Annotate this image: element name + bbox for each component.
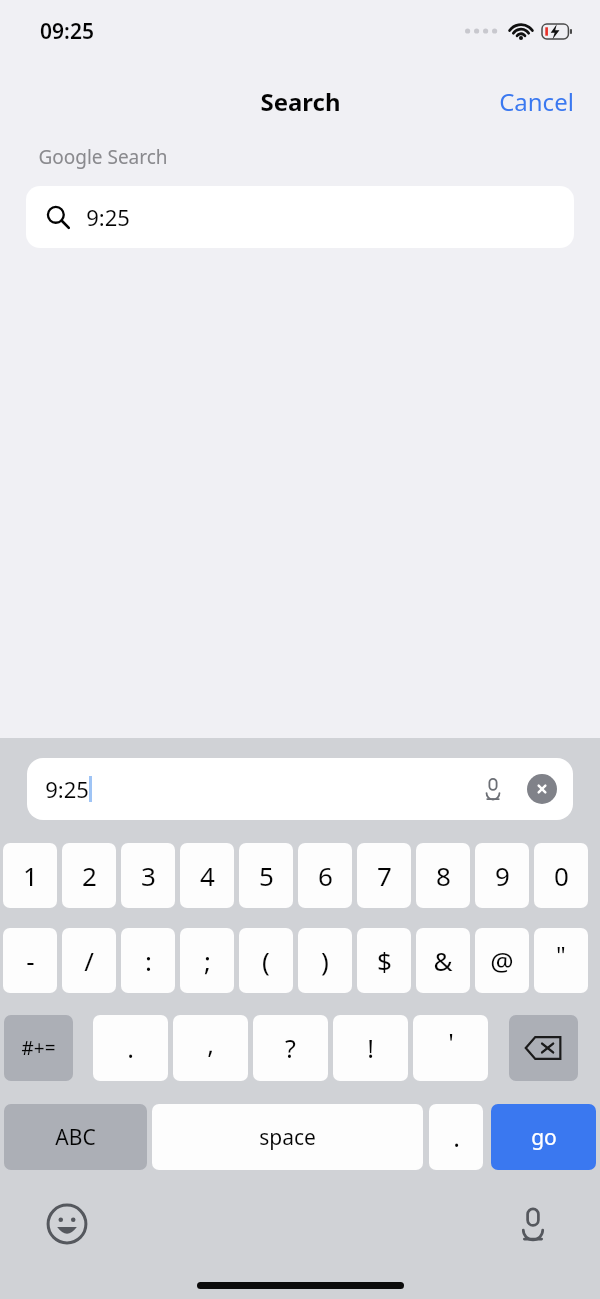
button[interactable]: 9 bbox=[475, 843, 529, 908]
staticText: ABC bbox=[55, 1123, 96, 1152]
button[interactable]: 9:25 bbox=[27, 758, 573, 820]
staticText: : bbox=[145, 943, 152, 978]
staticText: , bbox=[207, 1027, 214, 1061]
staticText: & bbox=[433, 943, 453, 978]
button[interactable]: ) bbox=[298, 928, 352, 993]
staticText: - bbox=[26, 943, 35, 978]
button[interactable]: " bbox=[534, 928, 588, 993]
button[interactable]: 6 bbox=[298, 843, 352, 908]
button[interactable]: ? bbox=[253, 1015, 328, 1081]
staticText: 1 bbox=[23, 858, 38, 893]
staticText: space bbox=[259, 1123, 316, 1152]
staticText: 5 bbox=[259, 858, 274, 893]
button[interactable]: space bbox=[152, 1104, 423, 1170]
button[interactable]: 1 bbox=[3, 843, 57, 908]
button[interactable]: go bbox=[491, 1104, 596, 1170]
staticText: 4 bbox=[200, 858, 215, 893]
staticText: 0 bbox=[554, 858, 569, 893]
staticText: Cancel bbox=[499, 85, 574, 118]
staticText: 09:25 bbox=[40, 17, 94, 46]
button[interactable]: 3 bbox=[121, 843, 175, 908]
staticText: 9:25 bbox=[45, 774, 89, 804]
button[interactable]: Emoji keyboard bbox=[42, 1199, 92, 1249]
staticText: 9:25 bbox=[86, 202, 130, 232]
button[interactable]: . bbox=[93, 1015, 168, 1081]
button[interactable]: ; bbox=[180, 928, 234, 993]
staticText: ' bbox=[448, 1025, 454, 1059]
button[interactable]: Clear text bbox=[527, 774, 557, 804]
staticText: @ bbox=[490, 943, 514, 978]
staticText: . bbox=[453, 1120, 460, 1154]
staticText: ) bbox=[321, 943, 329, 978]
staticText: 8 bbox=[436, 858, 451, 893]
button[interactable]: & bbox=[416, 928, 470, 993]
staticText: ! bbox=[367, 1031, 374, 1065]
button[interactable]: 0 bbox=[534, 843, 588, 908]
button[interactable]: 2 bbox=[62, 843, 116, 908]
staticText: . bbox=[127, 1031, 134, 1065]
button[interactable]: Voice input bbox=[473, 769, 513, 809]
button[interactable]: Cancel bbox=[493, 81, 580, 122]
button[interactable]: ABC bbox=[4, 1104, 147, 1170]
staticText: / bbox=[84, 943, 94, 978]
staticText: $ bbox=[377, 943, 392, 978]
button[interactable]: ' bbox=[413, 1015, 488, 1081]
button[interactable]: 7 bbox=[357, 843, 411, 908]
staticText: go bbox=[531, 1123, 557, 1152]
button[interactable]: @ bbox=[475, 928, 529, 993]
button[interactable]: $ bbox=[357, 928, 411, 993]
button[interactable]: ! bbox=[333, 1015, 408, 1081]
button[interactable]: / bbox=[62, 928, 116, 993]
staticText: ; bbox=[204, 943, 211, 978]
staticText: " bbox=[556, 938, 566, 971]
button[interactable]: Voice dictation bbox=[508, 1199, 558, 1249]
button[interactable]: ( bbox=[239, 928, 293, 993]
button[interactable]: #+= bbox=[4, 1015, 73, 1081]
staticText: #+= bbox=[21, 1035, 56, 1061]
button[interactable]: , bbox=[173, 1015, 248, 1081]
staticText: Google Search bbox=[38, 144, 168, 170]
button[interactable] bbox=[509, 1015, 578, 1081]
staticText: ? bbox=[285, 1031, 296, 1065]
button[interactable]: 9:25 bbox=[26, 186, 574, 248]
staticText: 9 bbox=[495, 858, 510, 893]
staticText: 6 bbox=[318, 858, 333, 893]
staticText: Search bbox=[260, 85, 341, 118]
staticText: 7 bbox=[377, 858, 392, 893]
staticText: 3 bbox=[141, 858, 156, 893]
button[interactable]: 8 bbox=[416, 843, 470, 908]
button[interactable]: : bbox=[121, 928, 175, 993]
staticText: 2 bbox=[82, 858, 97, 893]
staticText: ( bbox=[262, 943, 270, 978]
button[interactable]: - bbox=[3, 928, 57, 993]
button[interactable]: . bbox=[429, 1104, 483, 1170]
button[interactable]: 5 bbox=[239, 843, 293, 908]
button[interactable]: 4 bbox=[180, 843, 234, 908]
